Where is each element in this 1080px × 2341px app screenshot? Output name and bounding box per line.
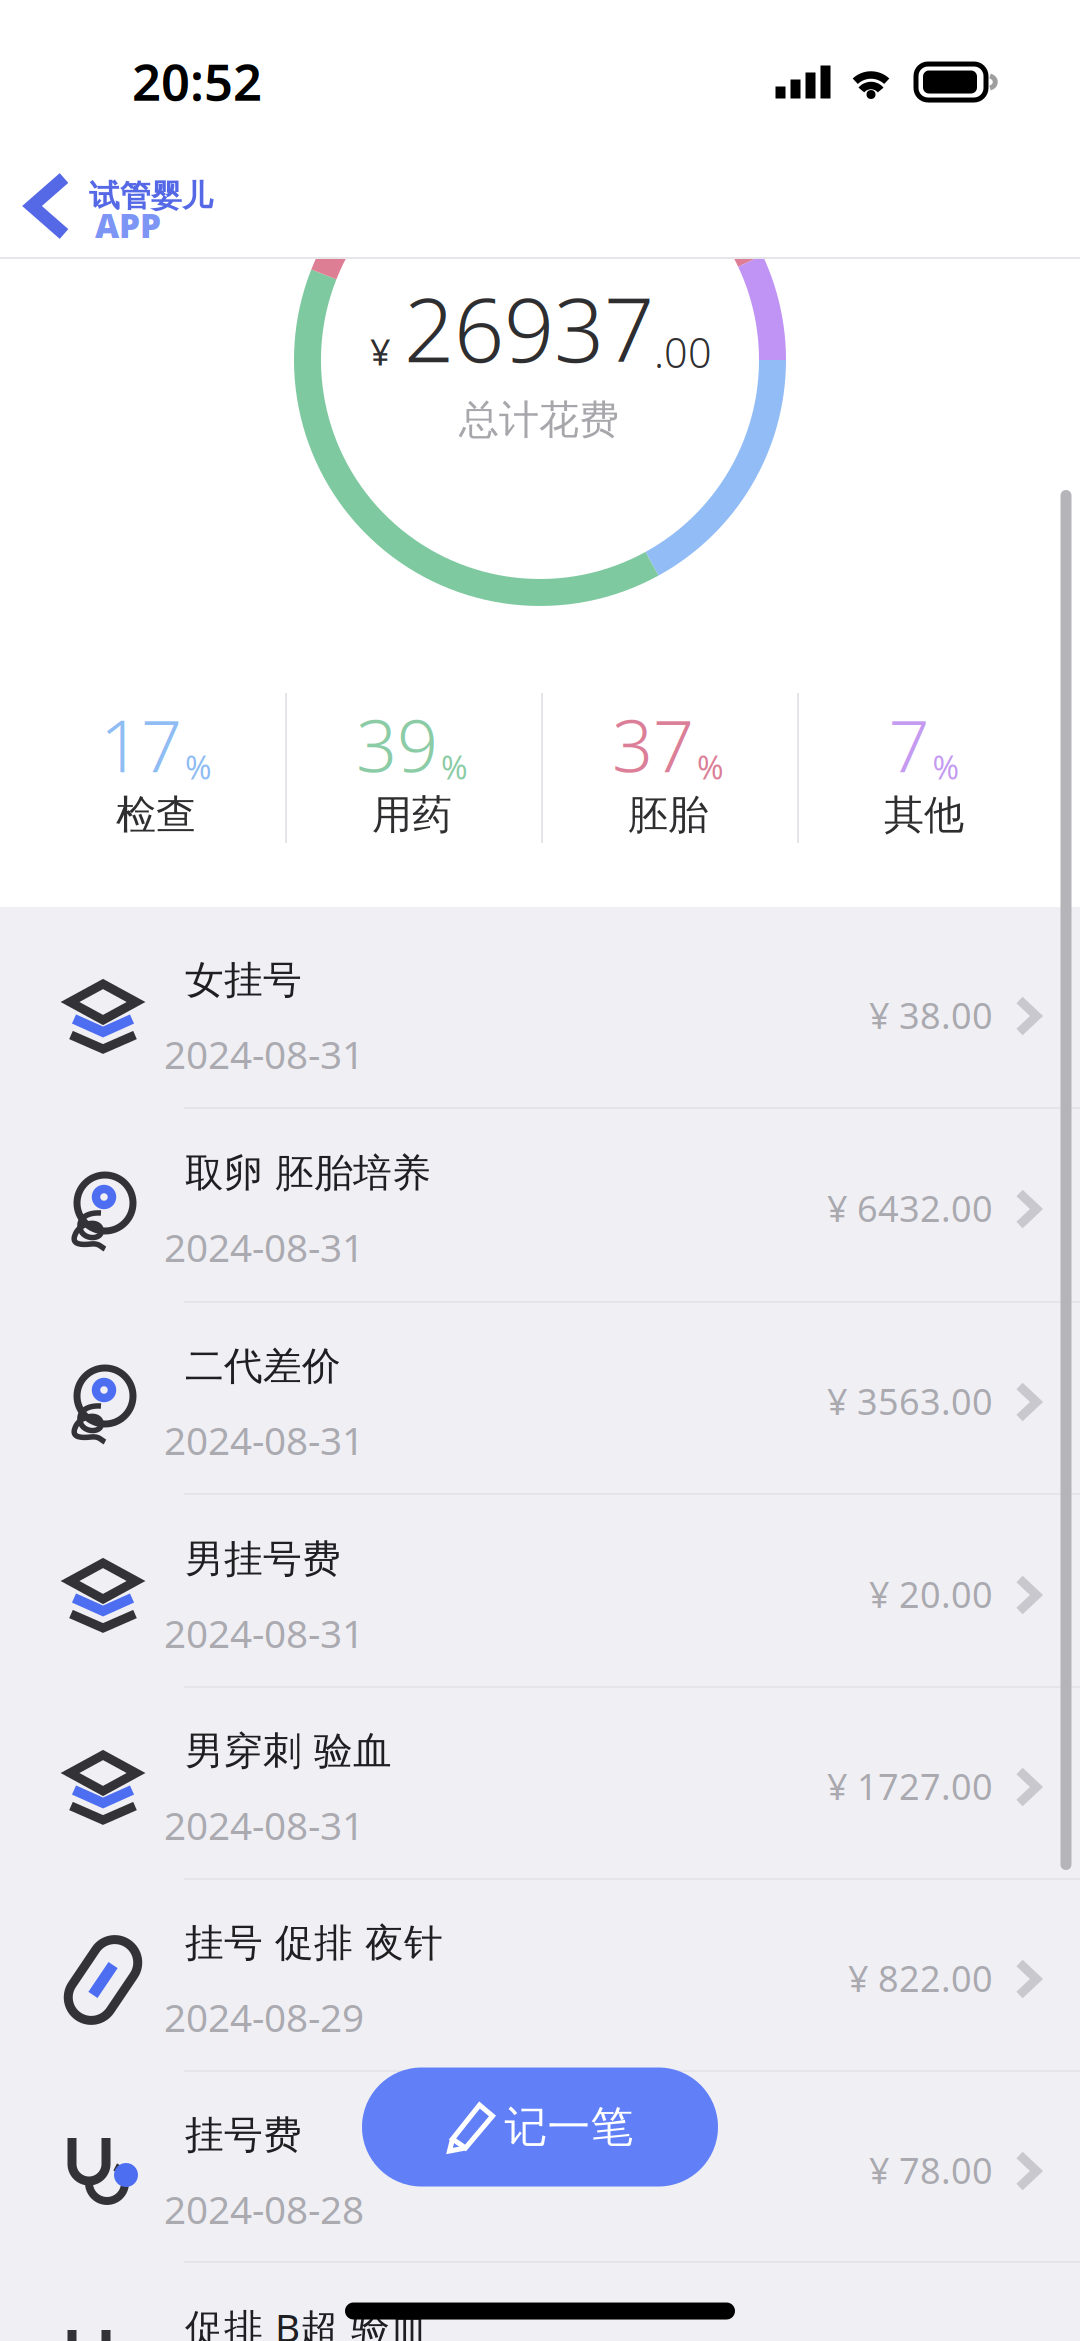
- staticText: 37: [612, 697, 694, 792]
- staticText: 20:52: [132, 47, 262, 115]
- button[interactable]: [0, 1878, 1080, 2070]
- button[interactable]: 记一笔: [362, 2067, 718, 2186]
- staticText: 2024-08-28: [164, 2183, 364, 2235]
- button[interactable]: [0, 915, 1080, 1107]
- staticText: 2024-08-31: [164, 1221, 364, 1273]
- staticText: %: [697, 746, 724, 788]
- staticText: 二代差价: [185, 1342, 341, 1390]
- staticText: ¥ 822.00: [848, 1954, 993, 2002]
- staticText: %: [185, 746, 212, 788]
- staticText: 检查: [116, 790, 196, 839]
- button[interactable]: [0, 2070, 1080, 2262]
- staticText: 取卵 胚胎培养: [185, 1149, 431, 1197]
- staticText: 胚胎: [628, 790, 708, 839]
- button[interactable]: [0, 1686, 1080, 1878]
- staticText: 试管婴儿: [89, 177, 213, 215]
- staticText: 2024-08-31: [164, 1799, 364, 1851]
- staticText: 2024-08-31: [164, 1028, 364, 1080]
- staticText: 17: [100, 697, 182, 792]
- staticText: 2024-08-31: [164, 1607, 364, 1659]
- staticText: ¥ 78.00: [869, 2146, 993, 2194]
- staticText: 用药: [372, 790, 452, 839]
- button[interactable]: [0, 2262, 1080, 2341]
- staticText: 记一笔: [504, 2101, 633, 2153]
- staticText: 39: [356, 697, 438, 792]
- staticText: 26937: [404, 270, 654, 386]
- staticText: ¥ 38.00: [869, 991, 993, 1039]
- staticText: 男挂号费: [185, 1535, 341, 1583]
- staticText: 2024-08-31: [164, 1414, 364, 1466]
- staticText: ¥ 6432.00: [827, 1184, 993, 1232]
- staticText: 挂号 促排 夜针: [185, 1919, 443, 1967]
- staticText: ¥ 3563.00: [827, 1377, 993, 1425]
- button[interactable]: [0, 1301, 1080, 1493]
- button[interactable]: Back: [10, 160, 122, 252]
- staticText: 男穿刺 验血: [185, 1727, 392, 1775]
- staticText: 挂号费: [185, 2111, 302, 2159]
- staticText: 女挂号: [185, 956, 302, 1004]
- button[interactable]: 试管婴儿: [89, 170, 289, 246]
- staticText: ¥ 20.00: [869, 1570, 993, 1618]
- staticText: 促排 B超 验血: [185, 2301, 429, 2341]
- staticText: %: [441, 746, 468, 788]
- staticText: 2024-08-29: [164, 1991, 364, 2043]
- staticText: 其他: [884, 790, 964, 839]
- staticText: .00: [654, 324, 712, 379]
- button[interactable]: [0, 1108, 1080, 1300]
- staticText: 总计花费: [459, 395, 619, 444]
- staticText: %: [932, 746, 959, 788]
- staticText: 7: [888, 697, 929, 792]
- staticText: ¥: [370, 328, 391, 375]
- staticText: ¥ 1727.00: [827, 1762, 993, 1810]
- button[interactable]: [0, 1494, 1080, 1686]
- staticText: APP: [95, 203, 161, 247]
